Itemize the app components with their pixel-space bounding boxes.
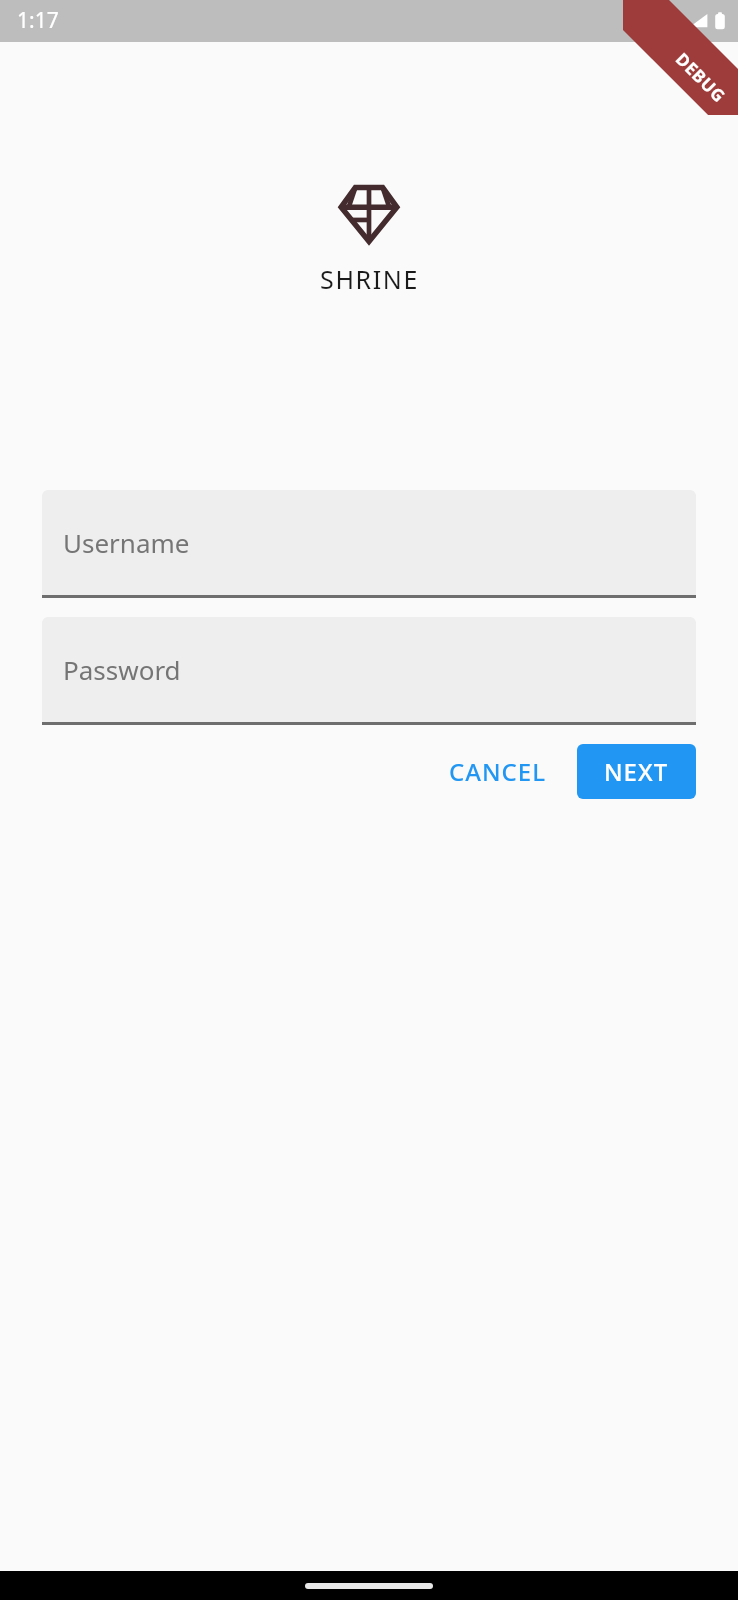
button[interactable]: CANCEL xyxy=(433,741,563,802)
button[interactable]: Password xyxy=(42,617,696,725)
staticText: Password xyxy=(63,652,181,687)
staticText: 1:17 xyxy=(17,6,59,35)
staticText: DEBUG xyxy=(671,47,731,107)
staticText: CANCEL xyxy=(449,755,547,788)
button[interactable]: NEXT xyxy=(577,744,696,799)
button[interactable]: Username xyxy=(42,490,696,598)
staticText: NEXT xyxy=(604,755,669,788)
staticText: Username xyxy=(63,525,190,560)
staticText: SHRINE xyxy=(320,262,419,296)
